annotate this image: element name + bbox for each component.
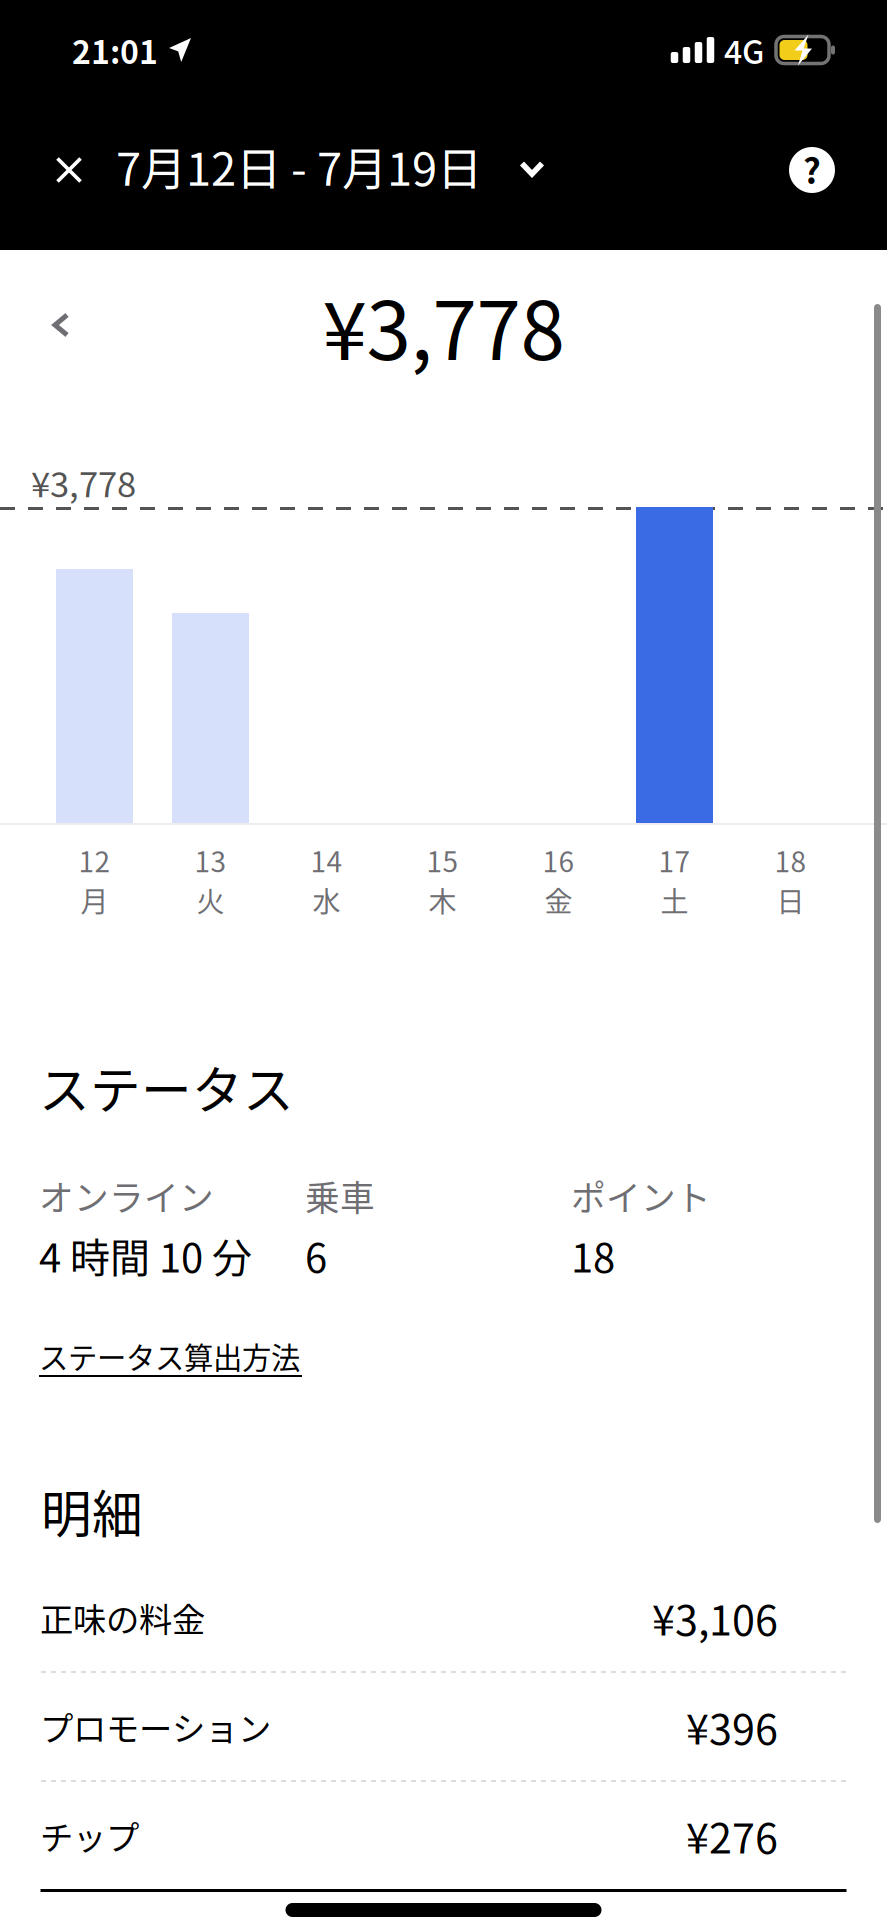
staticText: オンライン <box>39 1171 214 1221</box>
staticText: 15 <box>426 840 458 880</box>
staticText: 14 <box>310 840 342 880</box>
staticText: ¥396 <box>686 1697 778 1756</box>
staticText: 18 <box>571 1226 615 1284</box>
staticText: ¥3,778 <box>322 267 564 383</box>
staticText: 火 <box>196 880 224 920</box>
staticText: 12 <box>78 840 110 880</box>
staticText: 17 <box>658 840 690 880</box>
staticText: ¥276 <box>686 1806 778 1865</box>
staticText: ¥3,106 <box>652 1588 778 1647</box>
staticText: 4G <box>724 27 764 73</box>
staticText: 乗車 <box>305 1171 375 1221</box>
staticText: チップ <box>40 1811 139 1860</box>
staticText: 6 <box>305 1226 327 1284</box>
staticText: 7月12日 - 7月19日 <box>116 133 482 199</box>
staticText: 水 <box>312 880 340 920</box>
staticText: 16 <box>542 840 574 880</box>
staticText: 21:01 <box>72 27 158 73</box>
staticText: 13 <box>194 840 226 880</box>
staticText: 土 <box>660 880 688 920</box>
staticText: 4 時間 10 分 <box>39 1226 252 1284</box>
staticText: 日 <box>776 880 804 920</box>
staticText: 木 <box>428 880 456 920</box>
staticText: ¥3,778 <box>31 457 136 507</box>
staticText: ステータス算出方法 <box>39 1335 300 1377</box>
staticText: 正味の料金 <box>40 1593 205 1642</box>
staticText: ポイント <box>571 1171 711 1221</box>
button[interactable]: 閉じる <box>36 132 102 218</box>
staticText: 明細 <box>41 1474 143 1548</box>
button[interactable]: ヘルプ <box>763 132 861 218</box>
button[interactable]: 前の週 <box>30 289 92 361</box>
staticText: プロモーション <box>40 1702 271 1751</box>
button[interactable]: 7月12日 - 7月19日 <box>102 132 554 218</box>
staticText: 18 <box>774 840 806 880</box>
staticText: ステータス <box>39 1050 294 1124</box>
staticText: 金 <box>544 880 572 920</box>
staticText: ? <box>803 144 821 194</box>
button[interactable]: ステータス算出方法 <box>39 1275 302 1381</box>
staticText: 月 <box>80 880 108 920</box>
